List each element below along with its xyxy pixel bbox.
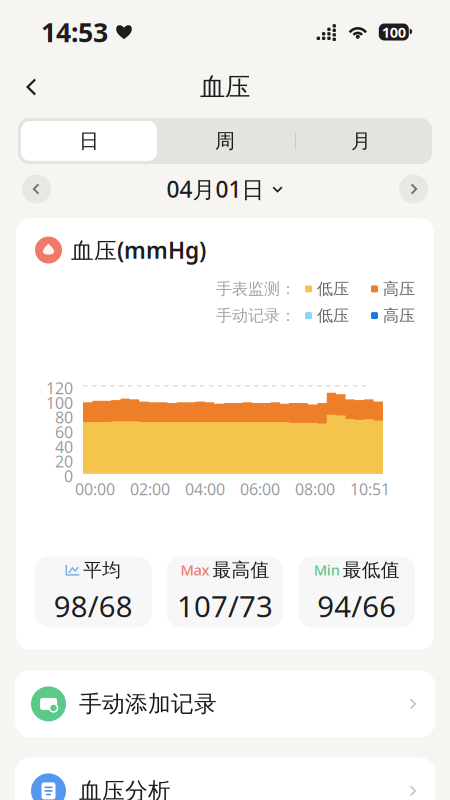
staticText: 平均 xyxy=(83,558,121,581)
staticText: 血压(mmHg) xyxy=(71,235,206,265)
staticText: 107/73 xyxy=(177,586,273,625)
staticText: 最低值 xyxy=(343,558,400,581)
button[interactable]: 手动添加记录 xyxy=(0,670,450,737)
staticText: 04月01日 xyxy=(166,174,264,204)
staticText: 最高值 xyxy=(212,558,269,581)
staticText: 20 xyxy=(55,451,73,472)
staticText: 血压分析 xyxy=(79,777,171,800)
staticText: 60 xyxy=(55,421,73,443)
staticText: 0 xyxy=(64,465,73,487)
staticText: 手动添加记录 xyxy=(79,690,217,718)
staticText: 00:00 xyxy=(75,478,115,500)
staticText: 手表监测： xyxy=(216,279,296,299)
staticText: 低压 xyxy=(317,306,349,325)
staticText: 周 xyxy=(215,129,235,153)
staticText: 40 xyxy=(55,436,73,457)
staticText: 94/66 xyxy=(317,586,396,625)
button[interactable]: 周 xyxy=(157,121,293,161)
staticText: 120 xyxy=(46,377,73,399)
staticText: 高压 xyxy=(383,306,415,325)
button[interactable]: 月 xyxy=(293,121,429,161)
staticText: 08:00 xyxy=(295,478,335,500)
button[interactable]: Next day xyxy=(399,174,428,203)
button[interactable]: 04月01日 xyxy=(166,174,283,204)
button[interactable]: 血压分析 xyxy=(0,757,450,800)
staticText: 100 xyxy=(46,392,73,413)
staticText: Min xyxy=(314,560,340,580)
staticText: 100 xyxy=(382,22,406,42)
staticText: 手动记录： xyxy=(216,306,296,325)
staticText: 低压 xyxy=(317,279,349,299)
staticText: Max xyxy=(180,560,209,580)
staticText: 06:00 xyxy=(240,478,280,500)
staticText: 80 xyxy=(55,407,73,428)
button[interactable]: Previous day xyxy=(22,174,51,203)
staticText: 02:00 xyxy=(130,478,170,500)
staticText: 日 xyxy=(79,129,99,153)
staticText: 04:00 xyxy=(185,478,225,500)
staticText: 高压 xyxy=(383,279,415,299)
staticText: 14:53 xyxy=(41,14,108,50)
button[interactable]: Back xyxy=(10,65,54,109)
staticText: 98/68 xyxy=(54,586,133,625)
staticText: 血压 xyxy=(200,71,250,102)
button[interactable]: 日 xyxy=(21,121,157,161)
staticText: 月 xyxy=(351,129,371,153)
staticText: 10:51 xyxy=(350,478,390,500)
